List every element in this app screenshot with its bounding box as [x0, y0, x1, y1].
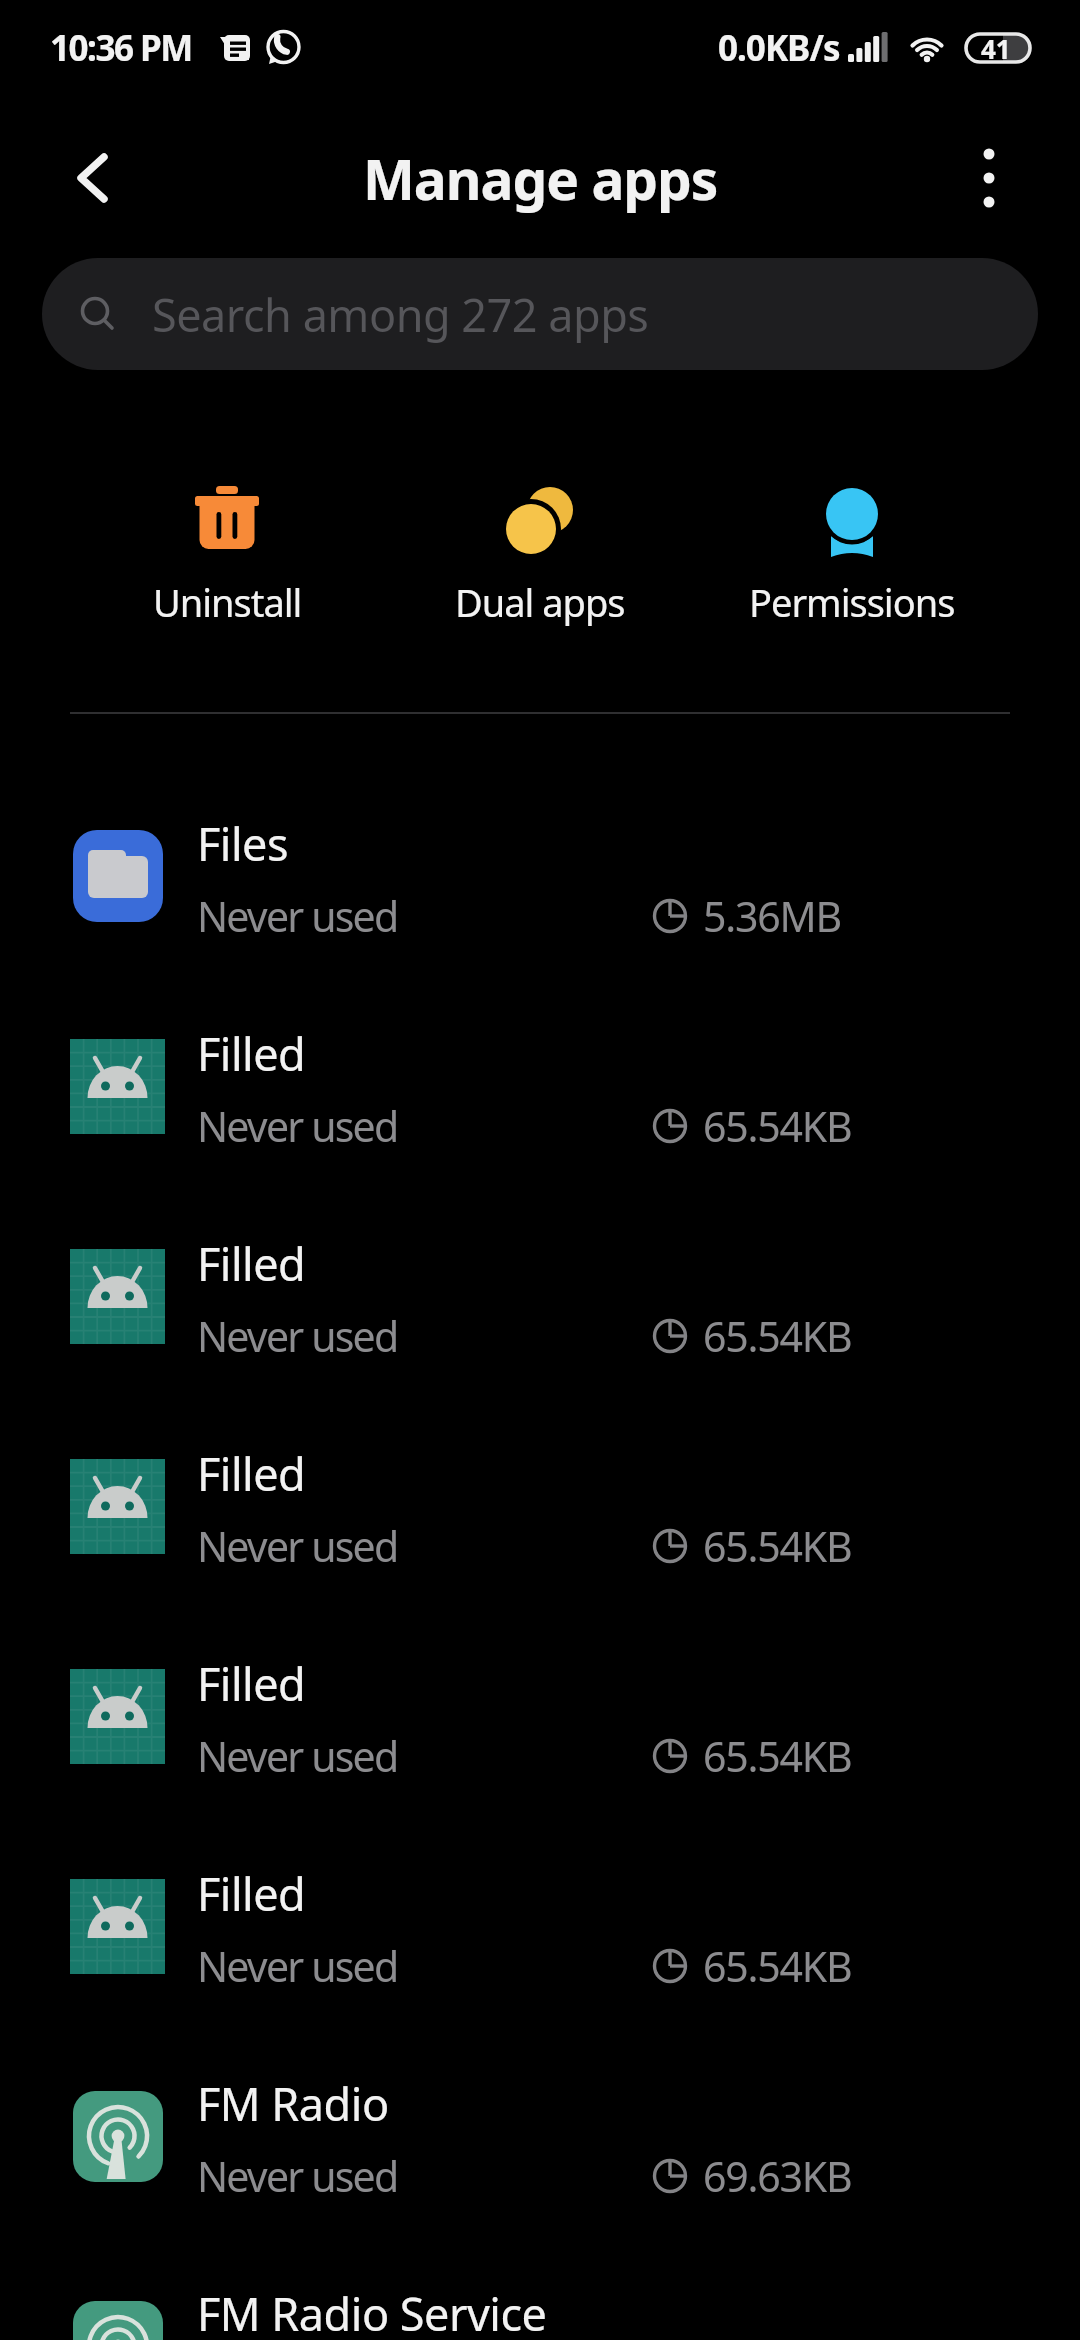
button[interactable]: Files [0, 771, 1080, 981]
staticText: Never used [197, 1938, 398, 1994]
staticText: 65.54KB [703, 1098, 852, 1154]
staticText: Filled [197, 1863, 306, 1924]
staticText: Filled [197, 1653, 306, 1714]
staticText: Never used [197, 888, 398, 944]
button[interactable] [72, 153, 112, 203]
staticText: 0.0KB/s [718, 24, 840, 72]
staticText: 65.54KB [703, 1308, 852, 1364]
staticText: Never used [197, 1098, 398, 1154]
staticText: Search among 272 apps [152, 284, 649, 345]
staticText: Manage apps [363, 141, 718, 216]
button[interactable]: Search among 272 apps [42, 258, 1038, 370]
staticText: 69.63KB [703, 2148, 852, 2204]
button[interactable]: FM Radio [0, 2031, 1080, 2241]
staticText: Uninstall [153, 576, 302, 628]
staticText: Filled [197, 1443, 306, 1504]
staticText: Filled [197, 1023, 306, 1084]
button[interactable]: Filled [0, 1401, 1080, 1611]
staticText: Never used [197, 1308, 398, 1364]
staticText: Files [197, 813, 289, 874]
button[interactable]: Filled [0, 1191, 1080, 1401]
staticText: 65.54KB [703, 1728, 852, 1784]
staticText: Permissions [749, 576, 955, 628]
staticText: FM Radio [197, 2073, 389, 2134]
button[interactable]: Uninstall [97, 430, 357, 650]
staticText: 5.36MB [703, 888, 841, 944]
button[interactable]: Filled [0, 981, 1080, 1191]
staticText: Filled [197, 1233, 306, 1294]
button[interactable]: Filled [0, 1821, 1080, 2031]
button[interactable]: Permissions [722, 430, 982, 650]
staticText: Never used [197, 1518, 398, 1574]
staticText: 65.54KB [703, 1518, 852, 1574]
staticText: Never used [197, 2148, 398, 2204]
staticText: Dual apps [455, 576, 625, 628]
button[interactable]: FM Radio Service [0, 2241, 1080, 2340]
staticText: 41 [981, 31, 1011, 65]
button[interactable] [982, 147, 996, 209]
staticText: 10:36 PM [50, 24, 192, 72]
staticText: FM Radio Service [197, 2283, 547, 2340]
button[interactable]: Filled [0, 1611, 1080, 1821]
button[interactable]: Dual apps [410, 430, 670, 650]
staticText: 65.54KB [703, 1938, 852, 1994]
staticText: Never used [197, 1728, 398, 1784]
